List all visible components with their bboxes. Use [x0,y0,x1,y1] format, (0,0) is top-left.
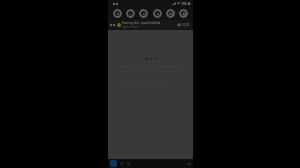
staticText: Tap to disable [122,25,139,29]
button[interactable]: Quick setting 3 [153,9,162,18]
other: Settings [177,23,181,27]
button[interactable]: Quick setting 0 [113,9,122,18]
staticText: 100 [181,2,187,6]
button[interactable]: Quick setting 2 [139,9,148,18]
button[interactable]: Quick setting 4 [166,9,175,18]
button[interactable]: Running fast · speed enabled [110,20,191,29]
button[interactable]: Quick setting 1 [126,9,135,18]
staticText: Running fast · speed enabled [122,21,161,25]
button[interactable]: Quick setting 5 [179,9,188,18]
button[interactable]: App icon [110,160,117,167]
staticText: 10:29 [182,23,190,27]
